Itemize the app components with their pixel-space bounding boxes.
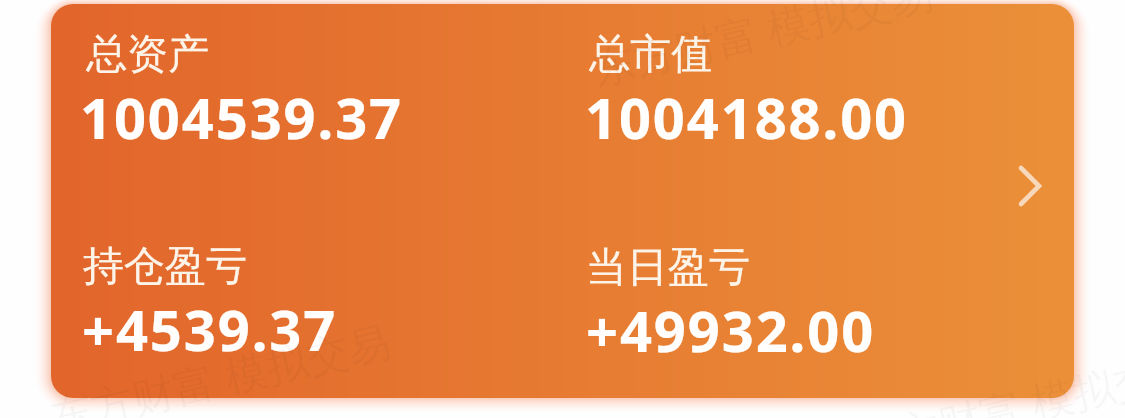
staticText: 1004539.37 [80,79,404,155]
staticText: +49932.00 [586,292,876,368]
staticText: 当日盈亏 [586,242,750,294]
staticText: 1004188.00 [585,79,909,155]
staticText: 总资产 [86,29,209,81]
staticText: +4539.37 [82,291,338,367]
staticText: 总市值 [589,29,712,81]
button[interactable]: 总资产 [51,4,1074,398]
staticText: 持仓盈亏 [83,241,247,293]
button[interactable]: 查看资产详情 [974,130,1074,242]
